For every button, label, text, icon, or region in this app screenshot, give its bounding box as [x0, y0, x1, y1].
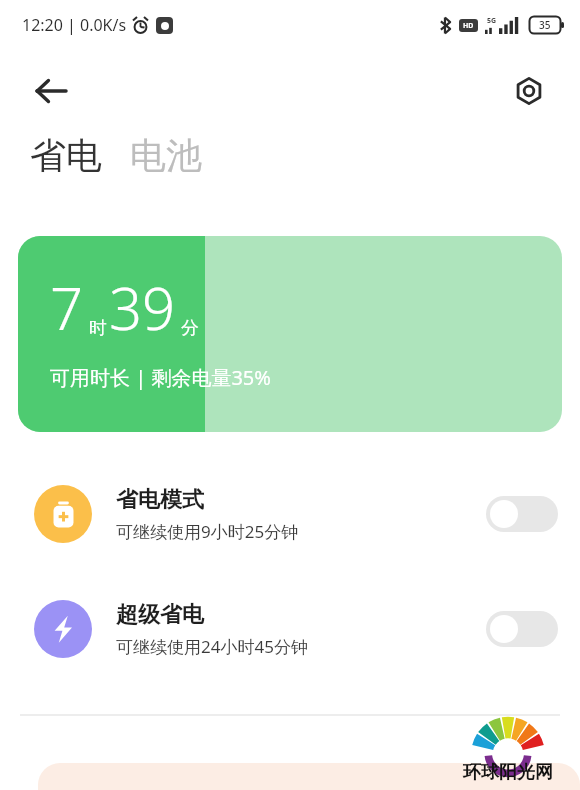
button[interactable]: 超级省电 toggle: [486, 611, 558, 647]
staticText: 12:20 | 0.0K/s: [22, 14, 127, 36]
staticText: 可用时长 | 剩余电量35%: [50, 364, 271, 391]
button[interactable]: 超级省电: [0, 593, 580, 665]
button[interactable]: 电池: [130, 133, 202, 178]
staticText: 省电模式: [116, 486, 204, 514]
button[interactable]: 省电模式: [0, 478, 580, 550]
staticText: 39: [109, 268, 176, 347]
staticText: HD: [463, 21, 474, 31]
button[interactable]: 7: [18, 236, 562, 432]
staticText: 时: [89, 317, 107, 340]
staticText: 分: [181, 317, 199, 340]
staticText: 超级省电: [116, 601, 204, 629]
staticText: 可继续使用24小时45分钟: [116, 635, 308, 658]
staticText: 5G: [487, 16, 497, 26]
button[interactable]: Back: [24, 64, 78, 118]
staticText: 7: [50, 268, 84, 347]
button[interactable]: Settings: [502, 64, 556, 118]
button[interactable]: 省电: [30, 133, 102, 178]
staticText: 环球阳光网: [463, 761, 553, 784]
button[interactable]: 省电模式 toggle: [486, 496, 558, 532]
staticText: 可继续使用9小时25分钟: [116, 520, 299, 543]
staticText: 35: [539, 18, 551, 32]
staticText: 电池: [130, 133, 202, 178]
staticText: 省电: [30, 133, 102, 178]
